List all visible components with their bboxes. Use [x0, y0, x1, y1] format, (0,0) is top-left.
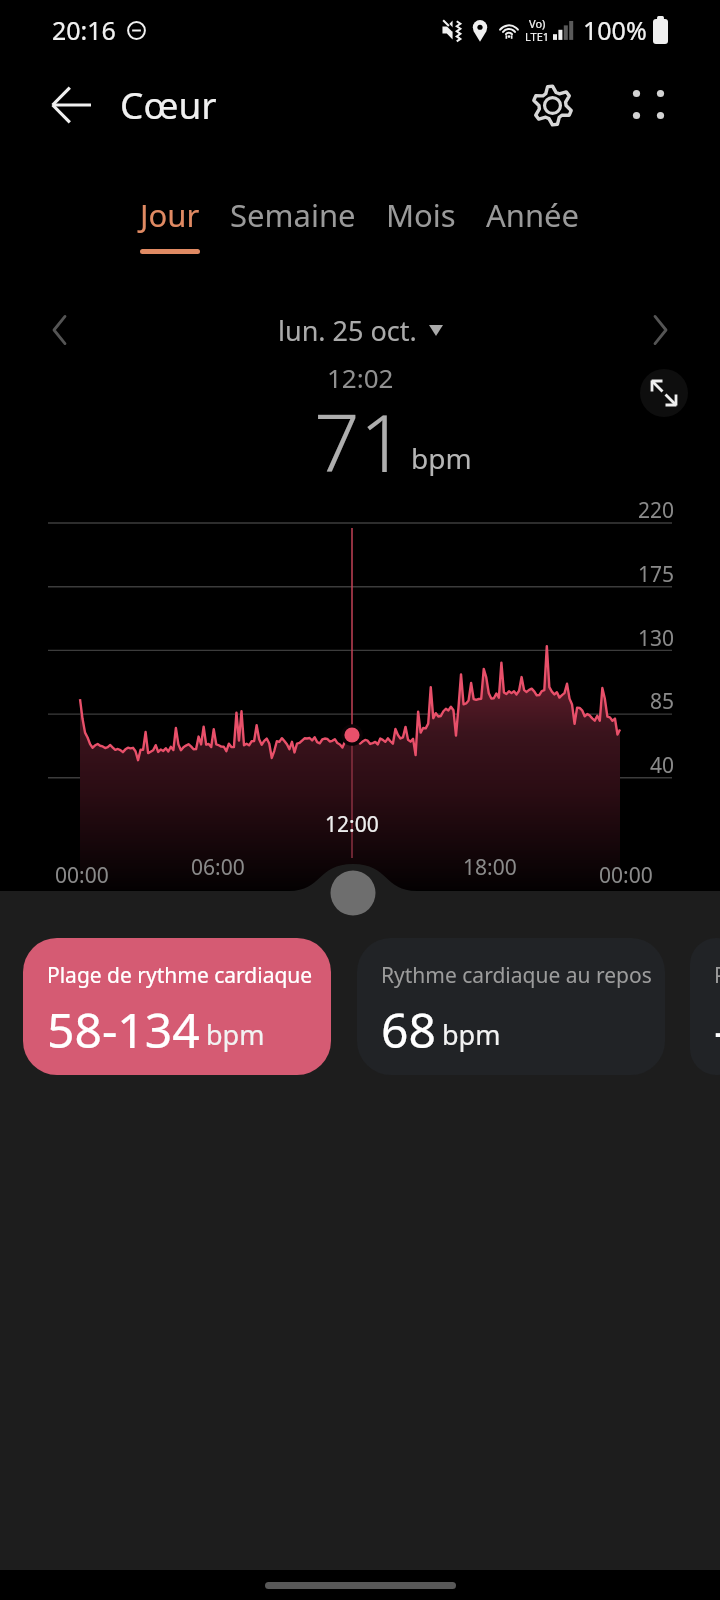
staticText: 20:16	[52, 13, 116, 47]
staticText: 00:00	[599, 861, 653, 890]
button[interactable]: Plage de rythme cardiaque	[23, 938, 331, 1075]
staticText: Cœur	[120, 79, 217, 129]
staticText: 100%	[583, 13, 647, 47]
button[interactable]: Pourcentage de mesures	[690, 938, 720, 1075]
button[interactable]: Jour	[125, 179, 215, 269]
staticText: 220	[638, 496, 675, 525]
staticText: 130	[638, 624, 675, 653]
staticText: 12:02	[327, 360, 394, 395]
staticText: -	[714, 997, 720, 1062]
button[interactable]: Rythme cardiaque au repos	[357, 938, 665, 1075]
staticText: LTE1	[525, 29, 550, 44]
staticText: Pourcentage de mesures	[714, 961, 720, 990]
staticText: 71	[314, 386, 406, 495]
staticText: 40	[650, 751, 675, 780]
staticText: Année	[486, 194, 580, 236]
staticText: bpm	[206, 1016, 265, 1053]
button[interactable]: Next day	[628, 298, 692, 362]
button[interactable]: Mois	[371, 179, 471, 269]
staticText: bpm	[411, 439, 472, 477]
staticText: Semaine	[230, 194, 356, 236]
staticText: 175	[638, 560, 675, 589]
button[interactable]: More options	[600, 56, 696, 152]
staticText: Jour	[140, 194, 200, 236]
staticText: lun. 25 oct.	[278, 312, 417, 349]
staticText: 18:00	[463, 853, 517, 882]
button[interactable]: Previous day	[28, 298, 92, 362]
staticText: 68	[381, 997, 436, 1062]
staticText: 58-134	[47, 997, 200, 1062]
staticText: Rythme cardiaque au repos	[381, 961, 652, 990]
button[interactable]: Expand chart	[640, 369, 688, 417]
staticText: 12:00	[325, 810, 379, 839]
staticText: Vo)	[529, 16, 546, 31]
staticText: 06:00	[191, 853, 245, 882]
staticText: Mois	[386, 194, 456, 236]
button[interactable]: Back	[11, 45, 131, 165]
staticText: bpm	[442, 1016, 501, 1053]
button[interactable]: Semaine	[215, 179, 371, 269]
button[interactable]: Année	[471, 179, 595, 269]
button[interactable]: lun. 25 oct.	[278, 312, 443, 349]
staticText: 85	[650, 687, 675, 716]
staticText: Plage de rythme cardiaque	[47, 961, 313, 990]
staticText: 00:00	[55, 861, 109, 890]
button[interactable]: Settings	[504, 57, 600, 153]
